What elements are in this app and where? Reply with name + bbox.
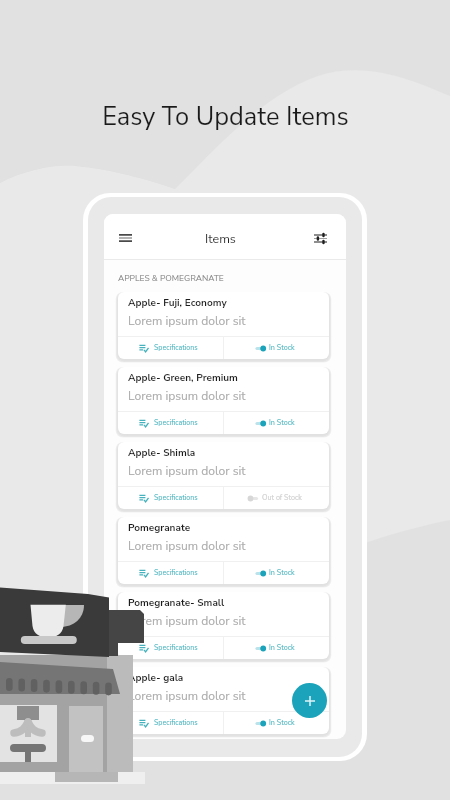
button[interactable]: Specifications <box>118 637 223 659</box>
button[interactable]: In Stock <box>224 337 329 359</box>
button[interactable]: Pomegranate- Small <box>118 592 329 659</box>
staticText: Items <box>205 230 236 247</box>
staticText: Specifications <box>154 343 198 353</box>
staticText: Lorem ipsum dolor sit <box>128 538 246 555</box>
staticText: Apple- Shimla <box>128 446 196 460</box>
button[interactable]: Pomegranate <box>118 517 329 584</box>
staticText: Pomegranate <box>128 521 191 535</box>
staticText: Specifications <box>154 643 198 653</box>
staticText: Lorem ipsum dolor sit <box>128 688 246 705</box>
button[interactable]: Apple- Fuji, Economy <box>118 292 329 359</box>
button[interactable]: Specifications <box>118 712 223 734</box>
staticText: Apple- gala <box>128 671 184 685</box>
staticText: Out of Stock <box>262 493 302 503</box>
button[interactable]: Specifications <box>118 562 223 584</box>
staticText: APPLES & POMEGRANATE <box>118 272 224 284</box>
button[interactable]: In Stock <box>224 412 329 434</box>
button[interactable]: Apple- Green, Premium <box>118 367 329 434</box>
staticText: Lorem ipsum dolor sit <box>128 613 246 630</box>
button[interactable]: Menu <box>114 227 136 249</box>
button[interactable]: Specifications <box>118 487 223 509</box>
button[interactable]: Specifications <box>118 412 223 434</box>
button[interactable]: Filter <box>309 227 331 249</box>
staticText: Lorem ipsum dolor sit <box>128 313 246 330</box>
staticText: In Stock <box>269 643 295 653</box>
button[interactable]: Apple- Shimla <box>118 442 329 509</box>
staticText: Lorem ipsum dolor sit <box>128 388 246 405</box>
button[interactable]: Out of Stock <box>224 487 329 509</box>
staticText: Pomegranate- Small <box>128 596 225 610</box>
staticText: In Stock <box>269 718 295 728</box>
staticText: In Stock <box>269 418 295 428</box>
staticText: Specifications <box>154 418 198 428</box>
button[interactable]: Apple- gala <box>118 667 329 734</box>
staticText: Apple- Fuji, Economy <box>128 296 227 310</box>
button[interactable]: Add item <box>292 683 327 718</box>
staticText: Specifications <box>154 718 198 728</box>
staticText: Apple- Green, Premium <box>128 371 238 385</box>
button[interactable]: In Stock <box>224 712 329 734</box>
button[interactable]: In Stock <box>224 562 329 584</box>
staticText: In Stock <box>269 343 295 353</box>
staticText: Easy To Update Items <box>102 99 349 134</box>
staticText: In Stock <box>269 568 295 578</box>
staticText: Specifications <box>154 568 198 578</box>
button[interactable]: Specifications <box>118 337 223 359</box>
staticText: Specifications <box>154 493 198 503</box>
button[interactable]: In Stock <box>224 637 329 659</box>
staticText: Lorem ipsum dolor sit <box>128 463 246 480</box>
